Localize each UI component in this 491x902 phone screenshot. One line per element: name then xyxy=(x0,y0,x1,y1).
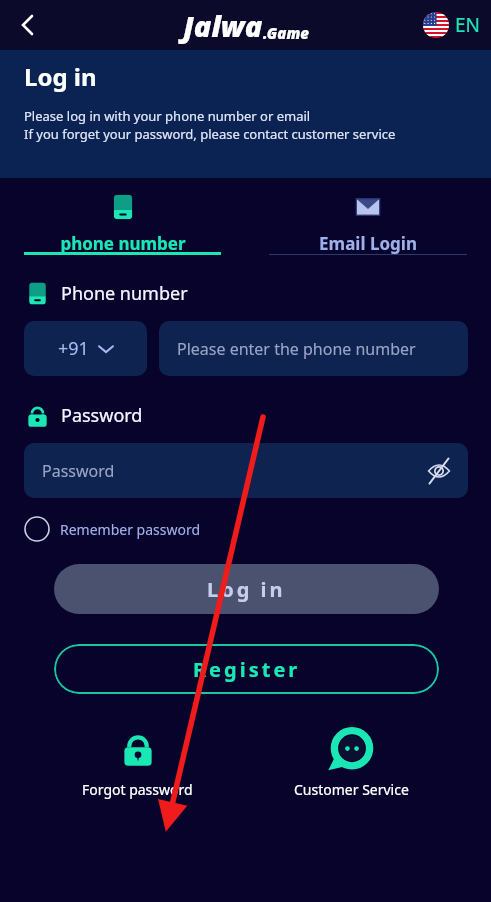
staticText: Please enter the phone number xyxy=(177,338,416,360)
button[interactable]: phone number xyxy=(0,178,245,255)
button[interactable]: Log in xyxy=(54,564,439,614)
staticText: .Game xyxy=(263,23,309,43)
button[interactable]: Show password xyxy=(424,456,454,486)
staticText: +91 xyxy=(58,336,89,361)
staticText: Forgot password xyxy=(82,780,193,799)
button[interactable]: EN xyxy=(423,12,481,38)
button[interactable]: Please enter the phone number xyxy=(159,321,468,376)
staticText: Remember password xyxy=(60,520,201,539)
button[interactable]: +91 xyxy=(24,321,147,376)
staticText: EN xyxy=(455,12,481,38)
staticText: Customer Service xyxy=(294,780,409,799)
staticText: phone number xyxy=(60,232,186,255)
button[interactable]: Forgot password xyxy=(64,728,211,799)
button[interactable]: Email Login xyxy=(245,178,491,255)
staticText: If you forget your password, please cont… xyxy=(24,125,396,143)
button[interactable]: Customer Service xyxy=(276,728,427,799)
staticText: Password xyxy=(61,403,143,428)
staticText: Email Login xyxy=(319,232,417,255)
staticText: Register xyxy=(193,656,301,683)
staticText: Phone number xyxy=(61,281,188,306)
button[interactable]: Back xyxy=(8,5,48,45)
button[interactable]: Password xyxy=(24,443,468,498)
staticText: Log in xyxy=(207,576,286,603)
button[interactable]: Remember password xyxy=(24,516,201,542)
staticText: Jalwa xyxy=(183,6,263,45)
button[interactable]: Register xyxy=(54,644,439,694)
staticText: Password xyxy=(42,460,115,482)
staticText: Log in xyxy=(24,60,97,93)
staticText: Please log in with your phone number or … xyxy=(24,107,311,125)
